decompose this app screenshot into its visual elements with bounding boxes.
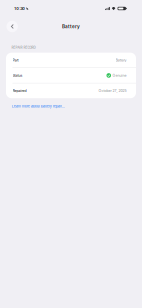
- button[interactable]: Learn more about battery repair...: [12, 104, 65, 108]
- staticText: Battery: [115, 58, 126, 62]
- staticText: Part: [12, 58, 18, 62]
- staticText: REPAIR RECORD: [11, 46, 35, 49]
- staticText: Repaired: [12, 89, 26, 93]
- staticText: Learn more about battery repair...: [12, 104, 65, 108]
- staticText: October 27, 2025: [98, 89, 126, 93]
- staticText: Genuine: [112, 73, 126, 78]
- staticText: Status: [12, 73, 22, 78]
- staticText: 10:30: [14, 6, 25, 11]
- button[interactable]: Back: [5, 19, 19, 33]
- staticText: Battery: [62, 24, 80, 29]
